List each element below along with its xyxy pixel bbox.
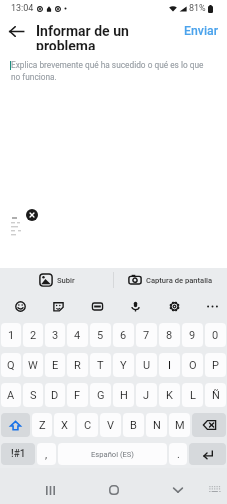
staticText: B: [130, 419, 137, 432]
button[interactable]: 3: [45, 323, 65, 347]
button[interactable]: Español (ES): [58, 443, 167, 465]
staticText: G: [97, 389, 105, 402]
button[interactable]: Y: [113, 353, 134, 377]
staticText: M: [175, 419, 185, 432]
button[interactable]: I: [159, 353, 180, 377]
button[interactable]: Adhesivos: [47, 295, 69, 317]
button[interactable]: Ocultar teclado: [166, 478, 190, 502]
button[interactable]: A: [1, 383, 21, 407]
button[interactable]: 8: [159, 323, 180, 347]
staticText: V: [107, 419, 115, 432]
staticText: 4: [74, 329, 81, 342]
button[interactable]: Mayúsculas: [1, 413, 30, 437]
staticText: R: [74, 359, 81, 372]
button[interactable]: 9: [182, 323, 203, 347]
button[interactable]: C: [77, 413, 98, 437]
staticText: 9: [189, 329, 196, 342]
button[interactable]: ,: [37, 443, 56, 465]
staticText: Enviar: [184, 24, 219, 38]
staticText: Ñ: [212, 389, 220, 402]
button[interactable]: T: [90, 353, 111, 377]
staticText: E: [52, 359, 59, 372]
button[interactable]: H: [113, 383, 134, 407]
button[interactable]: .: [169, 443, 187, 465]
button[interactable]: 7: [136, 323, 157, 347]
button[interactable]: D: [45, 383, 65, 407]
button[interactable]: U: [136, 353, 157, 377]
button[interactable]: GIF: [86, 295, 108, 317]
staticText: Explica brevemente qué ha sucedido o qué…: [11, 60, 214, 82]
staticText: Y: [120, 359, 127, 372]
staticText: J: [143, 389, 150, 402]
button[interactable]: 4: [67, 323, 88, 347]
staticText: P: [212, 359, 219, 372]
button[interactable]: 2: [23, 323, 43, 347]
button[interactable]: 5: [90, 323, 111, 347]
button[interactable]: B: [123, 413, 144, 437]
button[interactable]: Captura de pantalla: [114, 268, 227, 292]
staticText: D: [51, 389, 59, 402]
staticText: !#1: [11, 448, 26, 460]
staticText: L: [190, 389, 196, 402]
button[interactable]: J: [136, 383, 157, 407]
staticText: C: [84, 419, 92, 432]
button[interactable]: Enviar: [178, 21, 225, 41]
button[interactable]: Más opciones: [201, 295, 223, 317]
button[interactable]: 6: [113, 323, 134, 347]
button[interactable]: Ñ: [205, 383, 226, 407]
button[interactable]: Inicio: [102, 478, 126, 502]
staticText: ,: [45, 448, 48, 461]
button[interactable]: Emoji: [9, 295, 31, 317]
button[interactable]: F: [67, 383, 88, 407]
button[interactable]: O: [182, 353, 203, 377]
staticText: Q: [7, 359, 15, 372]
button[interactable]: G: [90, 383, 111, 407]
button[interactable]: V: [100, 413, 121, 437]
button[interactable]: W: [23, 353, 43, 377]
button[interactable]: L: [182, 383, 203, 407]
staticText: 1: [8, 329, 15, 342]
button[interactable]: Q: [1, 353, 21, 377]
button[interactable]: Subir: [0, 268, 113, 292]
button[interactable]: Recientes: [38, 478, 62, 502]
staticText: 3: [52, 329, 59, 342]
button[interactable]: Ajustes: [163, 295, 185, 317]
staticText: F: [74, 389, 81, 402]
button[interactable]: Cambiar teclado: [204, 479, 225, 500]
staticText: 0: [212, 329, 219, 342]
staticText: N: [153, 419, 161, 432]
staticText: T: [97, 359, 104, 372]
staticText: O: [189, 359, 197, 372]
button[interactable]: R: [67, 353, 88, 377]
button[interactable]: 0: [205, 323, 226, 347]
staticText: 5: [97, 329, 104, 342]
button[interactable]: !#1: [1, 443, 35, 465]
button[interactable]: Borrar: [192, 413, 226, 437]
button[interactable]: 1: [1, 323, 21, 347]
staticText: Z: [39, 419, 46, 432]
button[interactable]: P: [205, 353, 226, 377]
button[interactable]: N: [146, 413, 167, 437]
button[interactable]: Intro: [189, 443, 226, 465]
button[interactable]: Quitar imagen: [26, 209, 38, 221]
staticText: 2: [30, 329, 37, 342]
staticText: Captura de pantalla: [146, 276, 213, 285]
button[interactable]: X: [54, 413, 75, 437]
staticText: A: [7, 389, 15, 402]
button[interactable]: K: [159, 383, 180, 407]
staticText: S: [30, 389, 37, 402]
staticText: 6: [120, 329, 127, 342]
staticText: W: [28, 359, 38, 372]
button[interactable]: S: [23, 383, 43, 407]
staticText: 13:04: [11, 3, 34, 14]
staticText: U: [143, 359, 151, 372]
button[interactable]: Z: [32, 413, 52, 437]
staticText: K: [166, 389, 173, 402]
button[interactable]: Dictado por voz: [124, 295, 146, 317]
button[interactable]: M: [169, 413, 190, 437]
button[interactable]: E: [45, 353, 65, 377]
button[interactable]: Atrás: [4, 19, 28, 43]
staticText: 8: [166, 329, 173, 342]
staticText: .: [177, 448, 180, 461]
staticText: H: [120, 389, 128, 402]
